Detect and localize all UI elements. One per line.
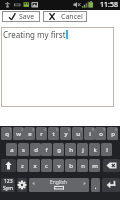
staticText: 1: [9, 127, 12, 132]
button[interactable]: i: [84, 127, 95, 140]
button[interactable]: p: [107, 127, 118, 140]
staticText: z: [21, 162, 24, 170]
staticText: Sym: [3, 185, 13, 192]
staticText: 2: [21, 127, 24, 132]
button[interactable]: a: [6, 143, 17, 156]
staticText: 5: [56, 127, 59, 132]
button[interactable]: s: [18, 143, 29, 156]
button[interactable]: Symbols: [1, 178, 15, 192]
button[interactable]: k: [89, 143, 100, 156]
button[interactable]: m: [89, 159, 100, 172]
staticText: m: [92, 162, 98, 170]
button[interactable]: b: [65, 159, 76, 172]
button[interactable]: o: [95, 127, 106, 140]
button[interactable]: v: [53, 159, 64, 172]
button[interactable]: Save: [2, 11, 40, 22]
staticText: n: [81, 162, 85, 170]
staticText: v: [57, 162, 61, 170]
button[interactable]: w: [13, 127, 24, 140]
button[interactable]: u: [72, 127, 83, 140]
staticText: r: [40, 130, 43, 138]
staticText: w: [16, 130, 21, 138]
staticText: f: [45, 146, 48, 154]
staticText: 4: [44, 127, 47, 132]
staticText: x: [33, 162, 37, 170]
button[interactable]: l: [101, 143, 112, 156]
staticText: English: [50, 179, 68, 186]
button[interactable]: x: [29, 159, 40, 172]
staticText: 123: [4, 178, 13, 185]
staticText: o: [99, 130, 103, 138]
button[interactable]: r: [36, 127, 47, 140]
staticText: y: [64, 130, 68, 138]
button[interactable]: Shift: [1, 159, 16, 172]
staticText: b: [69, 162, 73, 170]
staticText: c: [45, 162, 48, 170]
staticText: 8: [92, 127, 95, 132]
button[interactable]: t: [48, 127, 59, 140]
staticText: Save: [19, 12, 35, 22]
staticText: u: [76, 130, 80, 138]
button[interactable]: .: [91, 178, 100, 192]
button[interactable]: h: [65, 143, 76, 156]
button[interactable]: e: [24, 127, 35, 140]
button[interactable]: Settings: [17, 178, 27, 192]
button[interactable]: Cancel: [43, 11, 87, 22]
button[interactable]: Enter: [102, 178, 120, 192]
button[interactable]: y: [60, 127, 71, 140]
button[interactable]: Backspace: [103, 159, 120, 172]
staticText: l: [106, 146, 108, 154]
staticText: d: [34, 146, 38, 154]
staticText: g: [57, 146, 61, 154]
button[interactable]: j: [77, 143, 88, 156]
staticText: 7: [80, 127, 83, 132]
button[interactable]: q: [1, 127, 12, 140]
button[interactable]: f: [41, 143, 52, 156]
staticText: 11:58: [100, 0, 118, 10]
button[interactable]: c: [41, 159, 52, 172]
staticText: s: [22, 146, 25, 154]
staticText: Cancel: [61, 12, 83, 22]
button[interactable]: Space: [29, 178, 89, 192]
button[interactable]: d: [30, 143, 41, 156]
staticText: j: [82, 146, 84, 154]
staticText: 9: [103, 127, 106, 132]
staticText: k: [93, 146, 97, 154]
staticText: q: [5, 130, 9, 138]
staticText: h: [69, 146, 73, 154]
staticText: e: [28, 130, 32, 138]
staticText: i: [89, 130, 91, 138]
staticText: 3: [32, 127, 35, 132]
staticText: p: [111, 130, 115, 138]
button[interactable]: z: [17, 159, 28, 172]
staticText: 0: [115, 127, 118, 132]
staticText: 6: [68, 127, 71, 132]
staticText: .: [94, 180, 97, 191]
staticText: t: [52, 130, 55, 138]
staticText: a: [10, 146, 14, 154]
button[interactable]: g: [53, 143, 64, 156]
staticText: Creating my first: [3, 29, 66, 40]
button[interactable]: n: [77, 159, 88, 172]
button[interactable]: Creating my first: [1, 27, 114, 107]
